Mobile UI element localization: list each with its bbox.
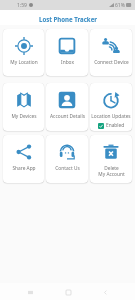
button[interactable]: Back (98, 285, 112, 299)
button[interactable]: Account Details (46, 83, 88, 131)
staticText: Inbox (61, 59, 74, 66)
button[interactable]: Location Updates (90, 83, 132, 131)
button[interactable]: Inbox (46, 29, 88, 76)
staticText: Delete My Account (98, 165, 125, 177)
staticText: 1:59 (17, 2, 27, 9)
staticText: Location Updates (91, 113, 131, 120)
staticText: Connect Device (94, 59, 129, 66)
button[interactable]: My Devices (3, 83, 44, 131)
button[interactable]: Share App (3, 135, 44, 183)
button[interactable]: Recents (23, 285, 37, 299)
staticText: Contact Us (55, 165, 80, 172)
button[interactable]: Connect Device (90, 29, 132, 76)
staticText: My Location (10, 59, 38, 66)
button[interactable]: Home (61, 285, 75, 299)
staticText: Enabled (106, 122, 125, 129)
button[interactable]: Contact Us (46, 135, 88, 183)
staticText: Share App (12, 165, 36, 172)
staticText: 61% (115, 2, 125, 9)
button[interactable]: Delete My Account (90, 135, 132, 183)
staticText: Lost Phone Tracker (39, 15, 97, 23)
staticText: My Devices (11, 113, 37, 120)
button[interactable]: My Location (3, 29, 44, 76)
staticText: Account Details (50, 113, 85, 120)
